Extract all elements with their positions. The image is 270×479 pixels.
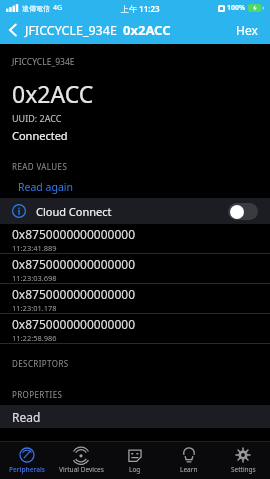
button[interactable]: Read: [0, 405, 270, 428]
staticText: 11:22:58.986: [12, 333, 57, 343]
staticText: Settings: [231, 465, 256, 474]
button[interactable]: 0x8750000000000000: [0, 254, 270, 283]
staticText: JFICCYCLE_934E: [25, 22, 117, 39]
staticText: 11:23:03.698: [12, 273, 57, 283]
staticText: 0x2ACC: [123, 21, 171, 39]
button[interactable]: Settings: [216, 442, 270, 479]
button[interactable]: Cloud Connect: [0, 198, 270, 224]
button[interactable]: Peripherals: [0, 442, 54, 479]
staticText: 0x8750000000000000: [12, 256, 136, 272]
staticText: Read again: [18, 180, 73, 194]
staticText: 0x8750000000000000: [12, 226, 136, 242]
staticText: Hex: [236, 22, 258, 38]
staticText: Learn: [180, 465, 198, 474]
button[interactable]: Log: [108, 442, 162, 479]
button[interactable]: 0x8750000000000000: [0, 284, 270, 313]
staticText: Virtual Devices: [59, 465, 104, 474]
staticText: DESCRIPTORS: [12, 358, 69, 369]
staticText: Connected: [12, 128, 68, 143]
staticText: 100%: [227, 3, 246, 13]
staticText: 0x8750000000000000: [12, 316, 136, 332]
button[interactable]: Hex: [234, 18, 260, 42]
staticText: Log: [129, 465, 141, 474]
staticText: 11:23:01.178: [12, 303, 57, 313]
button[interactable]: 0x8750000000000000: [0, 314, 270, 343]
staticText: PROPERTIES: [12, 389, 63, 400]
staticText: READ VALUES: [12, 161, 68, 172]
button[interactable]: 0x8750000000000000: [0, 224, 270, 253]
staticText: 上午 11:23: [121, 3, 160, 14]
staticText: JFICCYCLE_934E: [12, 56, 75, 68]
staticText: Read: [12, 409, 41, 425]
button[interactable]: Virtual Devices: [54, 442, 108, 479]
staticText: 0x2ACC: [12, 78, 94, 109]
staticText: 11:23:41.889: [12, 243, 57, 253]
staticText: Peripherals: [9, 465, 46, 474]
staticText: 4G: [53, 3, 63, 13]
button[interactable]: Back: [8, 22, 22, 38]
staticText: UUID: 2ACC: [12, 112, 62, 124]
staticText: 0x8750000000000000: [12, 286, 136, 302]
button[interactable]: Read again: [0, 176, 270, 198]
staticText: 遠傳電信: [22, 4, 50, 13]
staticText: Cloud Connect: [36, 204, 112, 219]
button[interactable]: Learn: [162, 442, 216, 479]
